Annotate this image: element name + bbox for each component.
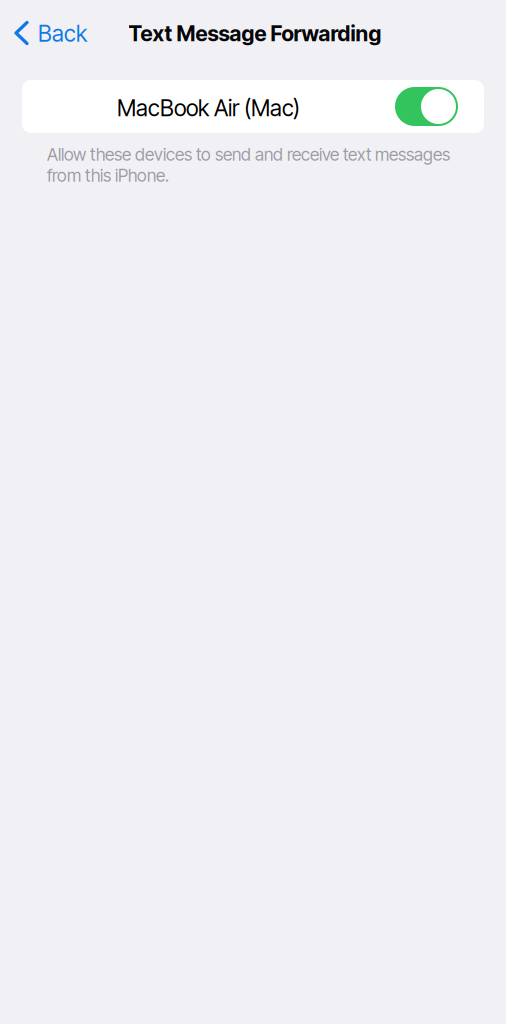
button[interactable]: MacBook Air (Mac) — [22, 80, 484, 133]
staticText: MacBook Air (Mac) — [117, 94, 300, 122]
staticText: Back — [38, 20, 87, 47]
button[interactable]: Back — [0, 10, 97, 54]
button[interactable]: MacBook Air (Mac), on — [395, 87, 458, 126]
staticText: Allow these devices to send and receive … — [47, 144, 450, 186]
staticText: Text Message Forwarding — [128, 21, 381, 46]
